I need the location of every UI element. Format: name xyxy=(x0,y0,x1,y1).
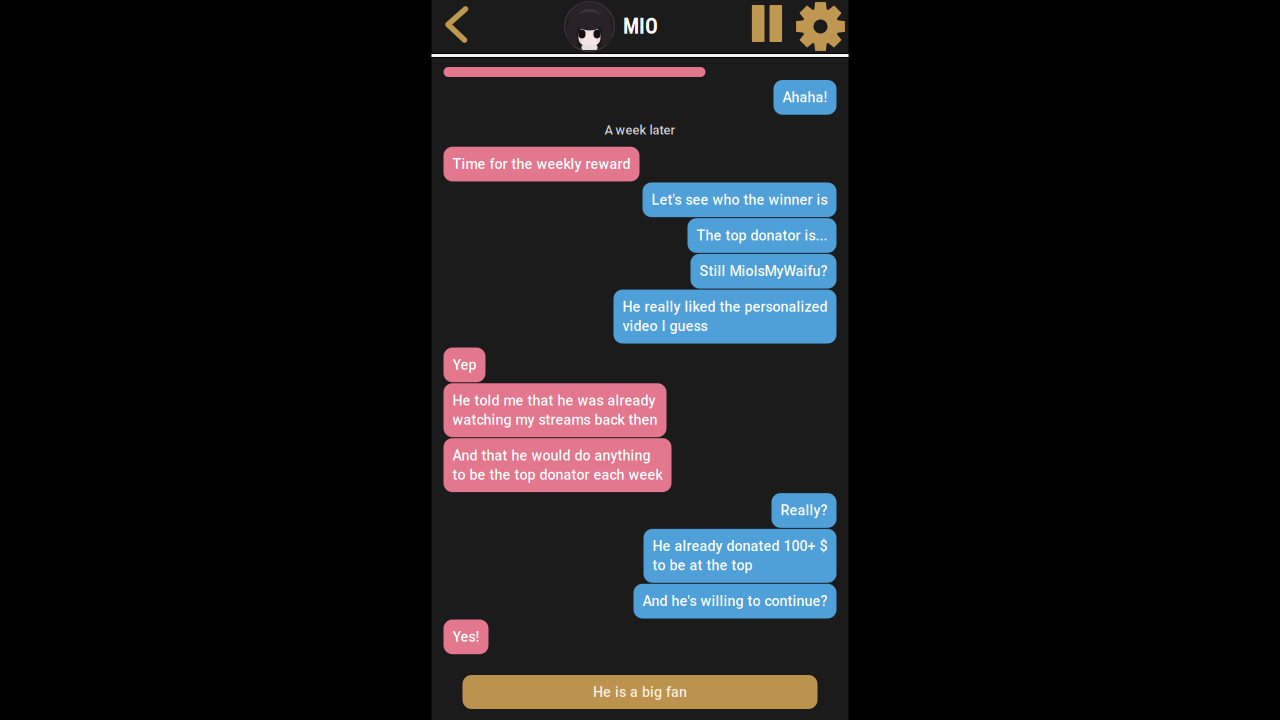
staticText: He really liked the personalized video I… xyxy=(622,299,827,334)
staticText: MIO xyxy=(623,14,658,39)
button[interactable]: Settings xyxy=(794,0,846,53)
staticText: Ahaha! xyxy=(782,89,827,106)
button[interactable]: Back xyxy=(431,0,482,53)
staticText: Time for the weekly reward xyxy=(452,156,630,172)
staticText: And he's willing to continue? xyxy=(642,593,827,609)
staticText: Let's see who the winner is xyxy=(651,191,827,208)
staticText: The top donator is... xyxy=(696,227,827,244)
button[interactable]: He is a big fan xyxy=(462,675,817,709)
button[interactable]: Pause xyxy=(739,0,794,53)
staticText: He already donated 100+ $ to be at the t… xyxy=(652,538,827,574)
staticText: Yep xyxy=(452,356,476,373)
staticText: He told me that he was already watching … xyxy=(452,392,657,428)
staticText: And that he would do anything to be the … xyxy=(452,447,662,483)
staticText: Still MioIsMyWaifu? xyxy=(699,263,827,280)
staticText: He is a big fan xyxy=(593,684,687,700)
staticText: A week later xyxy=(604,123,675,138)
staticText: Yes! xyxy=(452,628,479,645)
staticText: Really? xyxy=(780,502,827,519)
